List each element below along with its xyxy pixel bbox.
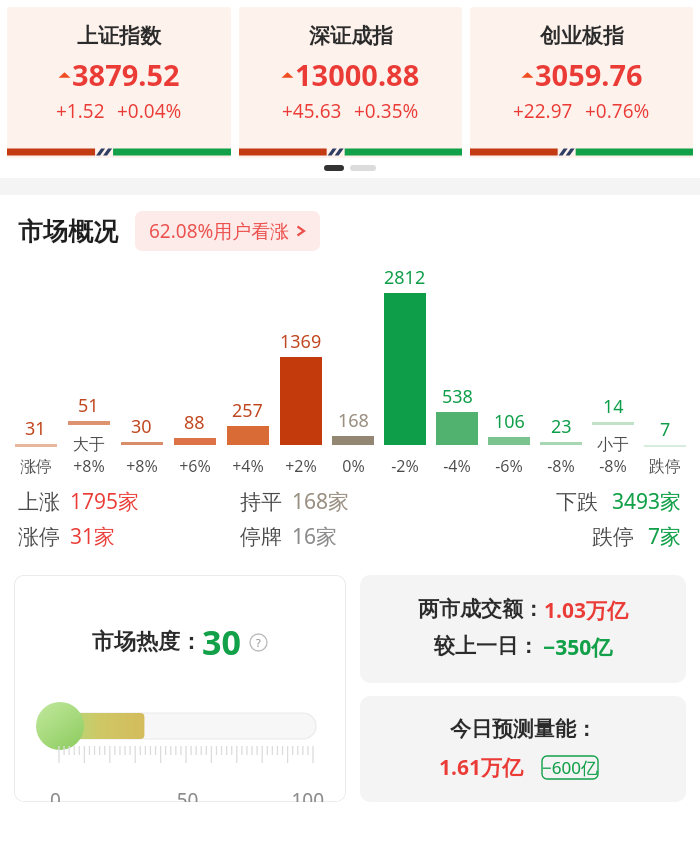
staticText: 跌停 xyxy=(649,457,681,477)
button[interactable]: 62.08%用户看涨 xyxy=(135,211,320,251)
staticText: 14 xyxy=(603,394,624,419)
staticText: 3879.52 xyxy=(72,55,180,94)
staticText: −350亿 xyxy=(543,633,613,662)
staticText: +0.76% xyxy=(585,98,650,124)
staticText: 50 xyxy=(142,787,233,802)
staticText: 538 xyxy=(442,384,473,409)
staticText: +2% xyxy=(285,455,317,477)
staticText: 市场热度： xyxy=(92,628,202,656)
staticText: 1369 xyxy=(280,329,322,354)
staticText: +45.63 xyxy=(282,98,342,124)
staticText: 上涨 xyxy=(18,489,60,515)
staticText: 51 xyxy=(78,393,99,418)
staticText: 88 xyxy=(184,410,205,435)
staticText: 3493家 xyxy=(612,487,682,516)
staticText: -6% xyxy=(495,455,523,477)
staticText: +0.35% xyxy=(354,98,419,124)
button[interactable]: 今日预测量能： xyxy=(360,696,686,802)
staticText: 3059.76 xyxy=(535,55,643,94)
staticText: 257 xyxy=(232,398,263,423)
staticText: 1.03万亿 xyxy=(544,596,628,625)
staticText: −600亿 xyxy=(542,756,598,779)
staticText: +22.97 xyxy=(513,98,573,124)
staticText: 深证成指 xyxy=(309,23,393,49)
staticText: +8% xyxy=(73,455,105,477)
staticText: 106 xyxy=(494,409,525,434)
button[interactable]: 上证指数 xyxy=(7,7,231,158)
staticText: 持平 xyxy=(240,489,282,515)
staticText: 跌停 xyxy=(592,524,634,550)
button[interactable]: 两市成交额： xyxy=(360,575,686,683)
staticText: -8% xyxy=(547,455,575,477)
staticText: +1.52 xyxy=(56,98,105,124)
staticText: 今日预测量能： xyxy=(450,716,597,742)
staticText: -8% xyxy=(599,455,627,477)
staticText: 0% xyxy=(342,455,365,477)
staticText: 13000.88 xyxy=(295,55,420,94)
staticText: 23 xyxy=(551,414,572,439)
staticText: 停牌 xyxy=(240,524,282,550)
staticText: 下跌 xyxy=(556,489,598,515)
staticText: 涨停 xyxy=(18,524,60,550)
staticText: 7家 xyxy=(648,522,682,551)
staticText: 两市成交额： xyxy=(418,596,544,622)
button[interactable]: 创业板指 xyxy=(470,7,693,158)
staticText: 小于 xyxy=(597,435,629,455)
staticText: -4% xyxy=(443,455,471,477)
staticText: 0 xyxy=(50,787,142,802)
button[interactable]: 深证成指 xyxy=(239,7,462,158)
staticText: 100 xyxy=(233,787,324,802)
staticText: -2% xyxy=(391,455,419,477)
staticText: +6% xyxy=(179,455,211,477)
staticText: +0.04% xyxy=(117,98,182,124)
staticText: 上证指数 xyxy=(77,23,161,49)
staticText: 31 xyxy=(25,416,46,441)
staticText: 2812 xyxy=(384,265,426,290)
staticText: 创业板指 xyxy=(540,23,624,49)
staticText: 涨停 xyxy=(20,457,52,477)
staticText: +8% xyxy=(126,455,158,477)
button[interactable]: Help xyxy=(249,633,268,652)
staticText: 较上一日： xyxy=(434,633,539,659)
staticText: 62.08%用户看涨 xyxy=(149,218,290,244)
staticText: 31家 xyxy=(70,522,116,551)
staticText: 1.61万亿 xyxy=(439,753,523,782)
staticText: 7 xyxy=(660,417,671,442)
staticText: 168家 xyxy=(292,487,350,516)
staticText: ? xyxy=(256,635,261,650)
button[interactable]: 市场热度： xyxy=(14,575,346,802)
staticText: 30 xyxy=(131,414,152,439)
staticText: 30 xyxy=(202,619,241,665)
staticText: 168 xyxy=(338,408,369,433)
staticText: 1795家 xyxy=(70,487,140,516)
staticText: 市场概况 xyxy=(18,216,118,247)
staticText: +4% xyxy=(232,455,264,477)
staticText: 16家 xyxy=(292,522,338,551)
staticText: 大于 xyxy=(73,435,105,455)
